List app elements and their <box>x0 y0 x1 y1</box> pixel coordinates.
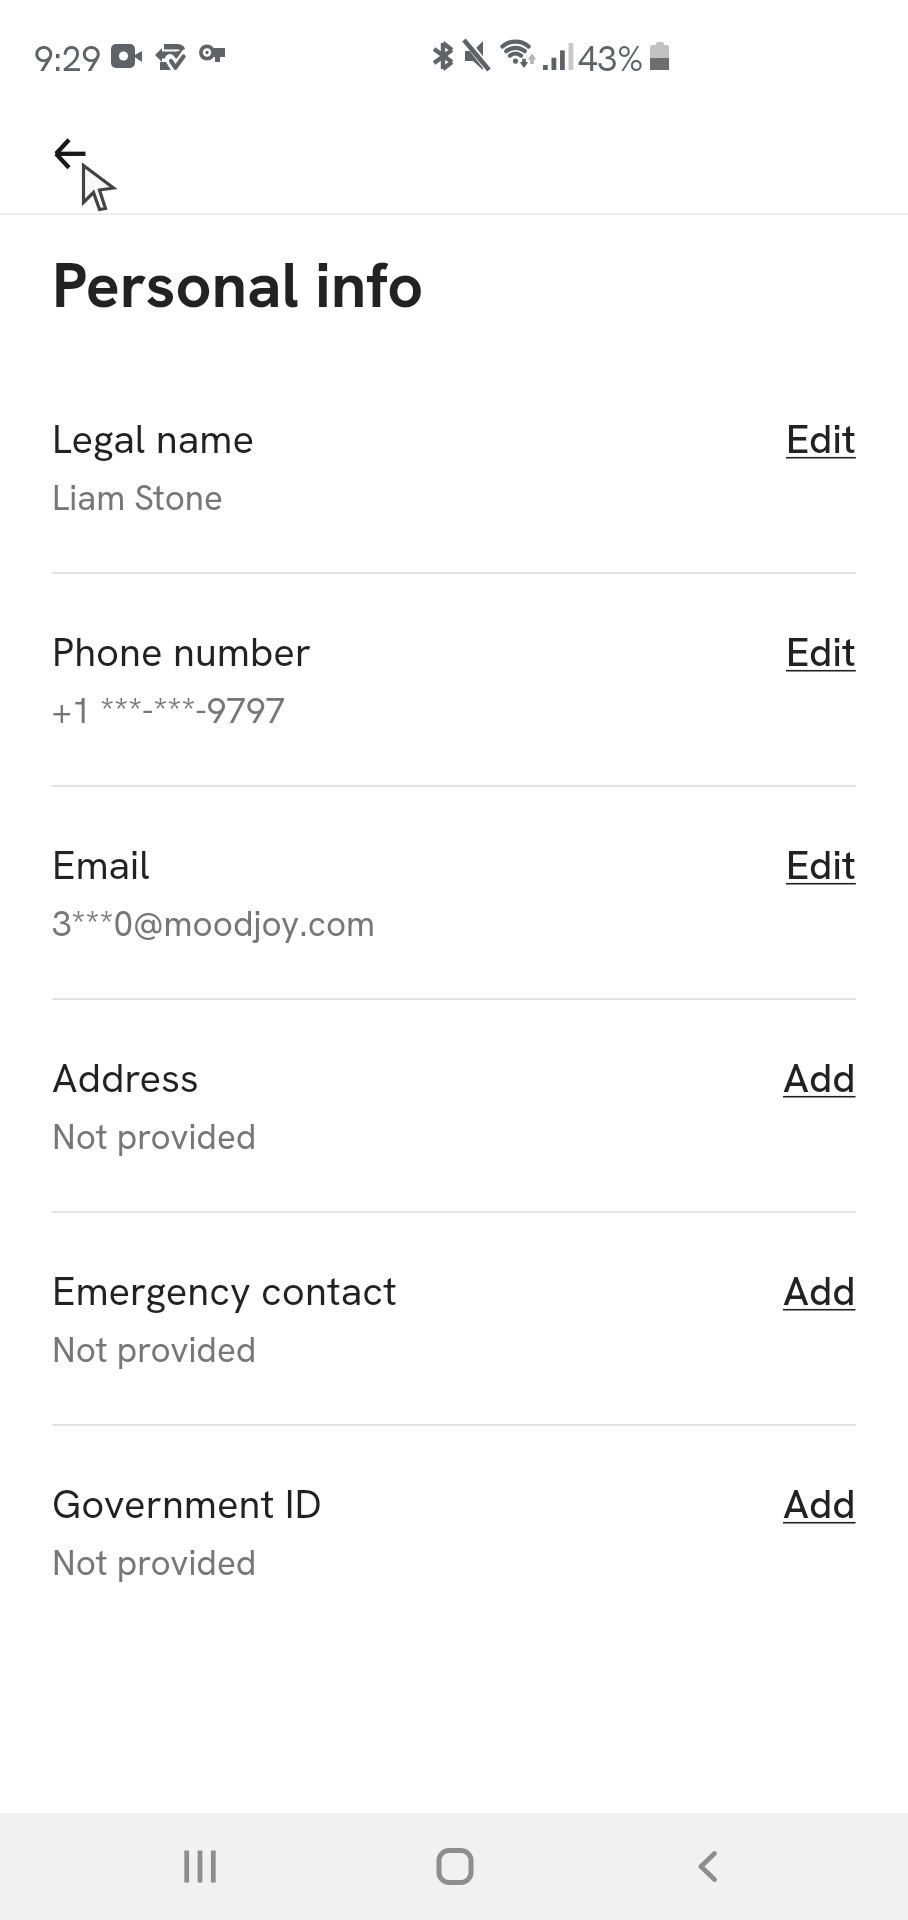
staticText: Legal name <box>52 413 254 465</box>
button[interactable]: Recent apps <box>145 1813 255 1920</box>
staticText: Liam Stone <box>52 475 223 521</box>
staticText: 3***0@moodjoy.com <box>52 901 376 947</box>
staticText: Not provided <box>52 1540 257 1586</box>
staticText: Email <box>52 839 150 891</box>
staticText: Not provided <box>52 1114 257 1160</box>
staticText: Edit <box>786 413 856 465</box>
staticText: Add <box>783 1478 856 1530</box>
button[interactable]: Email <box>0 839 908 947</box>
staticText: 9:29 <box>34 36 102 82</box>
staticText: Address <box>52 1052 199 1104</box>
staticText: Not provided <box>52 1327 257 1373</box>
button[interactable]: Home <box>400 1813 510 1920</box>
button[interactable]: Government ID <box>0 1478 908 1586</box>
button[interactable]: Legal name <box>0 413 908 521</box>
staticText: Edit <box>786 839 856 891</box>
staticText: Add <box>783 1265 856 1317</box>
staticText: Emergency contact <box>52 1265 397 1317</box>
button[interactable]: Phone number <box>0 626 908 734</box>
button[interactable]: Emergency contact <box>0 1265 908 1373</box>
staticText: Edit <box>786 626 856 678</box>
staticText: Phone number <box>52 626 312 678</box>
staticText: Add <box>783 1052 856 1104</box>
button[interactable]: Address <box>0 1052 908 1160</box>
staticText: +1 ***-***-9797 <box>52 688 286 734</box>
button[interactable]: Back <box>26 119 96 189</box>
staticText: Government ID <box>52 1478 322 1530</box>
staticText: Personal info <box>52 244 424 326</box>
staticText: 43% <box>578 36 644 82</box>
button[interactable]: Back <box>653 1813 763 1920</box>
